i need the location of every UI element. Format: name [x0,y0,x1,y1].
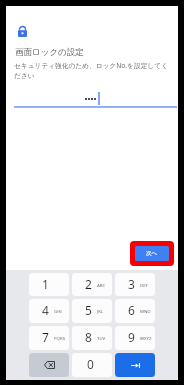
staticText: 8 [85,329,92,345]
button[interactable]: 9 [115,326,155,350]
staticText: 1 [42,276,49,292]
staticText: 0 [87,356,94,372]
button[interactable]: 5 [72,299,112,323]
button[interactable]: 4 [29,299,69,323]
staticText: WXYZ [140,335,152,341]
staticText: 4 [42,302,49,318]
staticText: 3 [128,276,135,292]
staticText: 次へ [146,250,158,257]
button[interactable]: Backspace [29,353,69,377]
staticText: セキュリティ強化のため、ロックNo.を設定してください [14,61,172,80]
button[interactable]: Enter [115,353,155,377]
staticText: GHI [54,308,62,314]
button[interactable]: 7 [29,326,69,350]
staticText: 2 [85,276,92,292]
staticText: DEF [140,282,148,288]
button[interactable]: 6 [115,299,155,323]
staticText: TUV [97,335,106,341]
staticText: 画面ロックの設定 [15,47,84,58]
staticText: MNO [140,308,151,314]
button[interactable]: 0 [72,353,112,377]
staticText: 5 [85,302,92,318]
button[interactable]: 3 [115,273,155,296]
staticText: 6 [128,302,135,318]
staticText: ABC [97,282,106,288]
button[interactable]: 2 [72,273,112,296]
button[interactable]: 8 [72,326,112,350]
staticText: JKL [97,308,104,314]
staticText: PQRS [54,335,65,341]
button[interactable]: 次へ [130,241,174,266]
staticText: 7 [42,329,49,345]
button[interactable]: 1 [29,273,69,296]
staticText: 9 [128,329,135,345]
